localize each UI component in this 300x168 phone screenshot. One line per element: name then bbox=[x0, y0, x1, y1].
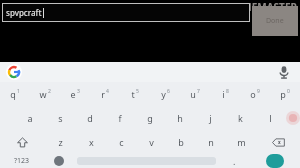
staticText: p bbox=[280, 88, 286, 100]
button[interactable]: Google bbox=[6, 64, 22, 80]
staticText: w bbox=[39, 88, 47, 100]
button[interactable]: Backspace bbox=[256, 130, 300, 154]
staticText: s bbox=[58, 112, 63, 124]
staticText: q bbox=[10, 88, 16, 100]
staticText: k bbox=[238, 112, 243, 124]
staticText: 5 bbox=[136, 88, 139, 95]
button[interactable]: Symbols bbox=[0, 154, 44, 168]
button[interactable]: v bbox=[136, 130, 166, 154]
staticText: i bbox=[222, 88, 225, 100]
button[interactable]: m bbox=[226, 130, 256, 154]
staticText: spvpcraft bbox=[6, 7, 42, 18]
staticText: j bbox=[209, 112, 212, 124]
staticText: x bbox=[89, 136, 94, 148]
staticText: c bbox=[119, 136, 124, 148]
staticText: a bbox=[27, 112, 33, 124]
button[interactable]: spvpcraft bbox=[2, 3, 250, 22]
staticText: b bbox=[178, 136, 184, 148]
button[interactable]: h bbox=[165, 106, 195, 130]
button[interactable]: s bbox=[45, 106, 75, 130]
button[interactable]: e bbox=[60, 82, 90, 106]
staticText: 1 bbox=[17, 88, 20, 95]
button[interactable]: w bbox=[30, 82, 60, 106]
button[interactable]: y bbox=[150, 82, 180, 106]
button[interactable]: Emoji bbox=[44, 154, 73, 168]
button[interactable]: k bbox=[225, 106, 255, 130]
staticText: KINEMASTER bbox=[233, 0, 298, 14]
button[interactable]: t bbox=[120, 82, 150, 106]
staticText: . bbox=[233, 155, 236, 167]
button[interactable]: b bbox=[166, 130, 196, 154]
staticText: 9 bbox=[257, 88, 260, 95]
staticText: Done bbox=[266, 16, 284, 26]
button[interactable]: . bbox=[220, 154, 249, 168]
staticText: r bbox=[101, 88, 105, 100]
staticText: z bbox=[58, 136, 63, 148]
staticText: l bbox=[269, 112, 272, 124]
staticText: f bbox=[118, 112, 122, 124]
staticText: o bbox=[250, 88, 256, 100]
button[interactable]: i bbox=[210, 82, 240, 106]
staticText: 2 bbox=[48, 88, 51, 95]
button[interactable]: g bbox=[135, 106, 165, 130]
staticText: v bbox=[149, 136, 154, 148]
button[interactable]: Shift bbox=[0, 130, 45, 154]
button[interactable]: c bbox=[106, 130, 136, 154]
staticText: d bbox=[87, 112, 93, 124]
staticText: u bbox=[190, 88, 196, 100]
staticText: e bbox=[70, 88, 76, 100]
button[interactable]: d bbox=[75, 106, 105, 130]
staticText: n bbox=[208, 136, 214, 148]
staticText: 0 bbox=[287, 88, 290, 95]
button[interactable]: p bbox=[270, 82, 300, 106]
button[interactable]: a bbox=[15, 106, 45, 130]
staticText: 3 bbox=[77, 88, 80, 95]
button[interactable]: o bbox=[240, 82, 270, 106]
button[interactable]: x bbox=[76, 130, 106, 154]
button[interactable]: n bbox=[196, 130, 226, 154]
button[interactable]: j bbox=[195, 106, 225, 130]
button[interactable]: Voice input bbox=[276, 64, 292, 80]
button[interactable]: z bbox=[45, 130, 76, 154]
button[interactable]: r bbox=[90, 82, 120, 106]
button[interactable]: q bbox=[0, 82, 30, 106]
button[interactable]: f bbox=[105, 106, 135, 130]
staticText: t bbox=[131, 88, 135, 100]
staticText: 8 bbox=[226, 88, 229, 95]
staticText: h bbox=[177, 112, 183, 124]
staticText: 4 bbox=[106, 88, 109, 95]
staticText: 6 bbox=[167, 88, 170, 95]
staticText: y bbox=[161, 88, 166, 100]
staticText: ?123 bbox=[14, 156, 30, 166]
staticText: 7 bbox=[197, 88, 200, 95]
button[interactable]: Enter bbox=[266, 154, 284, 168]
staticText: m bbox=[237, 136, 246, 148]
staticText: g bbox=[147, 112, 153, 124]
button[interactable]: l bbox=[255, 106, 285, 130]
button[interactable]: u bbox=[180, 82, 210, 106]
button[interactable]: Done bbox=[252, 6, 298, 36]
